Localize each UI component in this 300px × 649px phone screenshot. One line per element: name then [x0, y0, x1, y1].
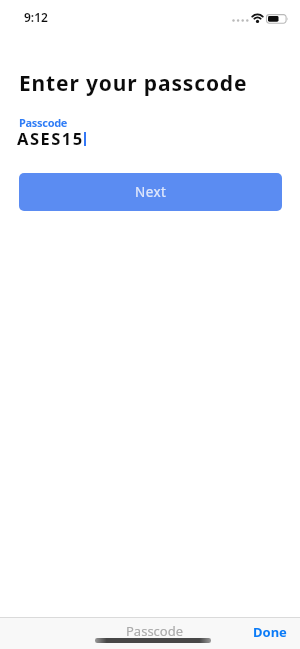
button[interactable]: Done [253, 623, 287, 641]
staticText: Enter your passcode [19, 69, 248, 98]
button[interactable]: Passcode [14, 110, 286, 152]
staticText: Next [135, 183, 167, 201]
button[interactable]: Next [19, 173, 282, 211]
button[interactable]: Passcode [126, 622, 184, 640]
staticText: Done [253, 623, 287, 641]
staticText: Passcode [19, 115, 68, 130]
staticText: Passcode [126, 622, 184, 640]
staticText: ASES15 [17, 127, 84, 149]
staticText: 9:12 [24, 9, 48, 25]
